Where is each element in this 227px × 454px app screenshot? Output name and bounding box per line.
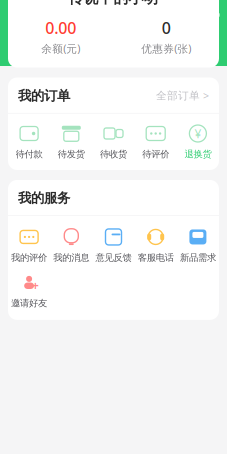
staticText: > [203,89,209,103]
button[interactable]: 待评价 [135,123,177,160]
button[interactable]: 我的消息 [50,227,92,263]
staticText: 客服电话 [138,252,174,263]
staticText: 我的订单 [18,87,70,104]
staticText: + [32,277,39,293]
staticText: 待评价 [142,148,169,160]
button[interactable]: ¥ [177,123,219,160]
staticText: 我的评价 [11,252,47,263]
staticText: 0 [162,17,171,38]
staticText: 我的消息 [53,252,89,263]
button[interactable]: 设置 [202,6,227,24]
button[interactable]: 全部订单 [156,89,209,103]
staticText: 意见反馈 [95,252,131,263]
staticText: 新品需求 [180,252,216,263]
staticText: 邀请好友 [11,297,47,309]
staticText: 传说中的小明 [68,0,158,7]
staticText: 待发货 [58,148,85,160]
button[interactable]: 意见反馈 [92,227,135,263]
button[interactable]: 0 [113,17,219,55]
button[interactable]: 客服电话 [135,227,177,263]
staticText: 余额(元) [41,41,80,56]
staticText: 0.00 [45,17,76,38]
staticText: 待付款 [16,148,43,160]
button[interactable]: 新品需求 [177,227,219,263]
staticText: ¥ [194,125,201,141]
staticText: 我的服务 [18,190,70,206]
button[interactable]: 待发货 [50,123,92,160]
button[interactable]: 我的评价 [8,227,50,263]
button[interactable]: 待收货 [92,123,135,160]
staticText: 全部订单 [156,89,200,102]
button[interactable]: 待付款 [8,123,50,160]
button[interactable]: + [8,272,50,309]
staticText: 待收货 [100,148,127,160]
staticText: 退换货 [184,148,211,160]
staticText: 优惠券(张) [141,41,191,56]
button[interactable]: 0.00 [8,17,113,55]
